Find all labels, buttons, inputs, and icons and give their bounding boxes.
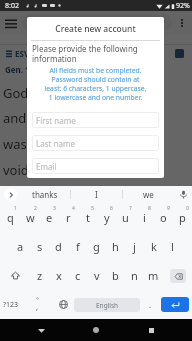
staticText: Email bbox=[36, 161, 57, 172]
staticText: All fields must be completed. Password s… bbox=[28, 66, 163, 102]
button[interactable]: Recent apps bbox=[137, 319, 165, 341]
staticText: First name bbox=[36, 115, 76, 126]
staticText: w bbox=[26, 210, 35, 225]
staticText: n bbox=[131, 268, 138, 283]
staticText: 92% bbox=[176, 1, 190, 11]
button[interactable]: z bbox=[30, 261, 49, 290]
button[interactable]: Email bbox=[32, 158, 159, 174]
staticText: f bbox=[76, 239, 80, 254]
staticText: i bbox=[143, 210, 146, 225]
staticText: Please provide the following information bbox=[32, 43, 159, 64]
button[interactable]: First name bbox=[32, 112, 159, 128]
staticText: y bbox=[104, 210, 110, 225]
staticText: p bbox=[179, 210, 186, 225]
staticText: k bbox=[151, 239, 157, 254]
button[interactable]: Enter bbox=[161, 297, 189, 312]
staticText: 9 bbox=[167, 205, 170, 212]
button[interactable]: b bbox=[106, 261, 125, 290]
button[interactable]: ?123 bbox=[0, 290, 22, 319]
staticText: l bbox=[171, 239, 174, 254]
button[interactable]: v bbox=[87, 261, 106, 290]
button[interactable]: g bbox=[87, 232, 106, 261]
staticText: s bbox=[37, 239, 43, 254]
staticText: c bbox=[75, 268, 81, 283]
button[interactable]: 6 bbox=[97, 203, 116, 232]
staticText: , bbox=[36, 301, 39, 312]
button[interactable]: a bbox=[11, 232, 30, 261]
button[interactable]: m bbox=[144, 261, 163, 290]
staticText: 5 bbox=[91, 205, 94, 212]
staticText: thanks bbox=[32, 189, 58, 200]
button[interactable]: Voice input bbox=[174, 186, 192, 203]
staticText: d bbox=[55, 239, 62, 254]
button[interactable]: n bbox=[125, 261, 144, 290]
button[interactable]: Search bbox=[22, 14, 172, 31]
staticText: o bbox=[160, 210, 167, 225]
staticText: z bbox=[37, 268, 43, 283]
button[interactable]: English bbox=[74, 298, 140, 312]
staticText: Create new account bbox=[27, 23, 164, 35]
button[interactable]: 7 bbox=[116, 203, 135, 232]
staticText: 7 bbox=[129, 205, 132, 212]
staticText: Last name bbox=[36, 138, 75, 149]
staticText: m bbox=[148, 268, 159, 283]
button[interactable]: Change language bbox=[52, 290, 74, 319]
button[interactable]: I bbox=[71, 186, 122, 203]
staticText: a bbox=[17, 239, 24, 254]
button[interactable]: j bbox=[125, 232, 144, 261]
staticText: j bbox=[133, 239, 136, 254]
button[interactable]: Back bbox=[27, 319, 55, 341]
staticText: 8:02 bbox=[5, 1, 19, 11]
button[interactable]: Shift bbox=[0, 261, 30, 290]
button[interactable]: c bbox=[68, 261, 87, 290]
button[interactable]: l bbox=[163, 232, 182, 261]
staticText: we bbox=[143, 189, 154, 200]
button[interactable]: we bbox=[123, 186, 174, 203]
staticText: e bbox=[46, 210, 53, 225]
staticText: g bbox=[93, 239, 100, 254]
staticText: 0 bbox=[186, 205, 189, 212]
button[interactable]: s bbox=[30, 232, 49, 261]
button[interactable]: 8 bbox=[135, 203, 154, 232]
button[interactable]: d bbox=[49, 232, 68, 261]
button[interactable]: x bbox=[49, 261, 68, 290]
button[interactable]: Last name bbox=[32, 135, 159, 151]
button[interactable]: Home bbox=[82, 319, 110, 341]
staticText: u bbox=[122, 210, 129, 225]
button[interactable]: Period bbox=[140, 290, 161, 319]
staticText: 8 bbox=[148, 205, 151, 212]
button[interactable]: 1 bbox=[0, 203, 20, 232]
staticText: v bbox=[94, 268, 100, 283]
button[interactable]: 5 bbox=[78, 203, 97, 232]
staticText: t bbox=[86, 210, 90, 225]
staticText: . bbox=[149, 299, 152, 310]
staticText: q bbox=[7, 210, 14, 225]
button[interactable]: thanks bbox=[20, 186, 70, 203]
button[interactable]: Comma bbox=[22, 290, 52, 319]
button[interactable]: k bbox=[144, 232, 163, 261]
staticText: r bbox=[66, 210, 71, 225]
staticText: 1 bbox=[14, 205, 17, 212]
button[interactable]: More suggestions bbox=[0, 186, 20, 203]
staticText: ESV bbox=[15, 48, 30, 59]
staticText: x bbox=[56, 268, 62, 283]
staticText: I bbox=[95, 189, 98, 200]
staticText: 6 bbox=[110, 205, 113, 212]
button[interactable]: Backspace bbox=[163, 261, 192, 290]
button[interactable]: Audio bbox=[175, 49, 184, 58]
button[interactable]: Menu bbox=[4, 16, 18, 30]
button[interactable]: 2 bbox=[20, 203, 40, 232]
button[interactable]: 0 bbox=[173, 203, 192, 232]
staticText: Gen. 1 bbox=[5, 64, 30, 75]
staticText: ?123 bbox=[3, 300, 19, 310]
button[interactable]: h bbox=[106, 232, 125, 261]
button[interactable]: 9 bbox=[154, 203, 173, 232]
button[interactable]: More options bbox=[175, 16, 189, 30]
button[interactable]: 4 bbox=[59, 203, 78, 232]
button[interactable]: f bbox=[68, 232, 87, 261]
staticText: h bbox=[112, 239, 119, 254]
staticText: 3 bbox=[53, 205, 56, 212]
staticText: God created the heavens and the earth. T… bbox=[3, 84, 156, 179]
button[interactable]: 3 bbox=[40, 203, 59, 232]
